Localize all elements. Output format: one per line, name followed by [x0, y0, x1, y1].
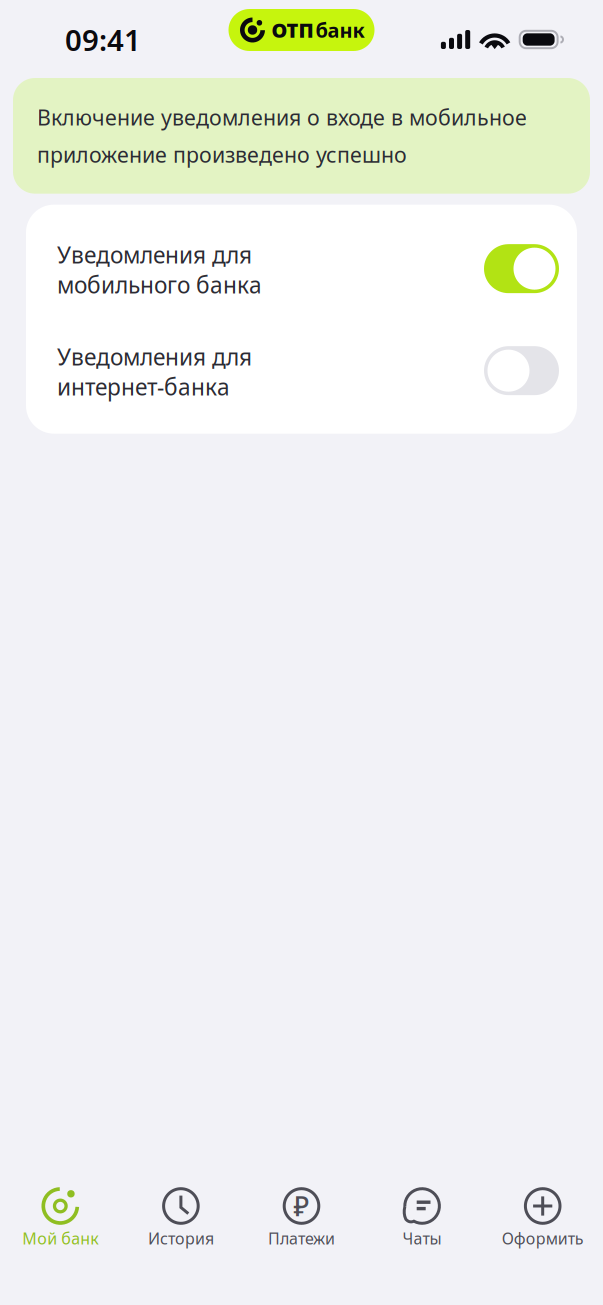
staticText: Платежи	[268, 1228, 335, 1249]
button[interactable]: ₽	[241, 1187, 362, 1249]
button[interactable]: Уведомления для	[26, 346, 577, 395]
staticText: ОТП	[271, 17, 313, 43]
staticText: Уведомления для	[57, 342, 252, 372]
staticText: Оформить	[502, 1228, 584, 1249]
staticText: мобильного банка	[57, 270, 262, 300]
staticText: банк	[315, 17, 364, 43]
staticText: Уведомления для	[57, 240, 252, 270]
button[interactable]: Мой банк	[0, 1187, 121, 1249]
button[interactable]: Уведомления для	[26, 244, 577, 293]
button[interactable]: Оформить	[482, 1187, 603, 1249]
button[interactable]: История	[121, 1187, 241, 1249]
staticText: интернет-банка	[57, 372, 230, 402]
button[interactable]: Чаты	[362, 1187, 482, 1249]
staticText: ₽	[293, 1188, 309, 1224]
staticText: Включение уведомления о входе в мобильно…	[37, 103, 527, 169]
staticText: История	[148, 1228, 214, 1249]
staticText: Чаты	[403, 1228, 442, 1249]
staticText: Мой банк	[22, 1228, 98, 1249]
staticText: 09:41	[65, 20, 141, 59]
